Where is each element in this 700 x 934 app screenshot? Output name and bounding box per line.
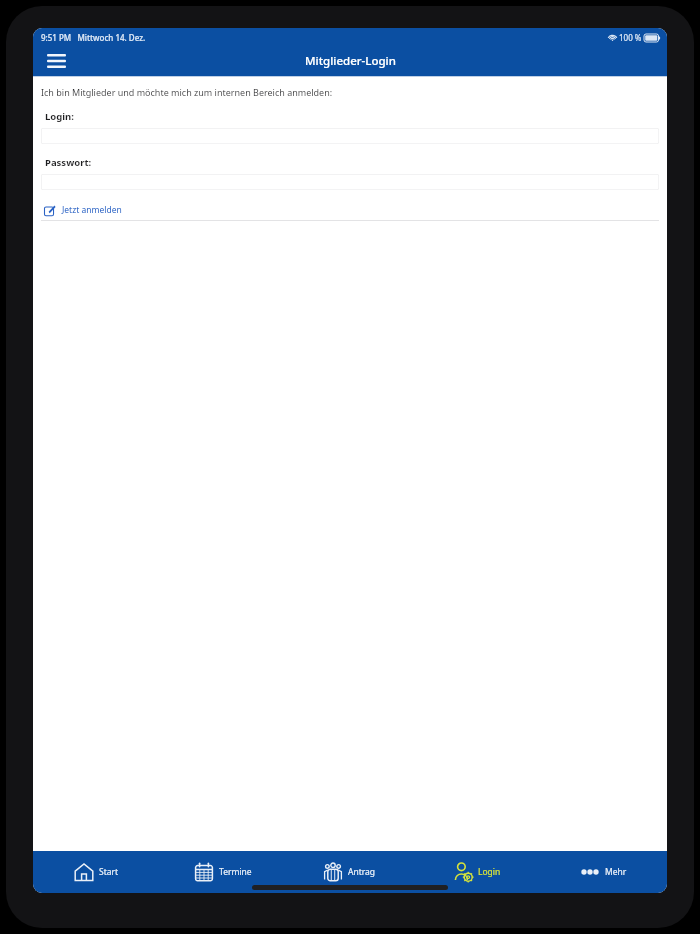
button[interactable] <box>41 174 659 190</box>
staticText: Passwort: <box>45 156 92 169</box>
button[interactable]: Antrag <box>286 851 413 893</box>
staticText: Login: <box>45 110 74 123</box>
staticText: Mitglieder-Login <box>305 53 396 69</box>
staticText: Login <box>478 866 501 878</box>
button[interactable]: Termine <box>159 851 286 893</box>
button[interactable]: Start <box>33 851 159 893</box>
staticText: 100 % <box>619 32 642 43</box>
button[interactable] <box>41 128 659 144</box>
staticText: 9:51 PM Mittwoch 14. Dez. <box>41 32 146 43</box>
button[interactable]: Jetzt anmelden <box>33 200 667 220</box>
staticText: Antrag <box>348 866 376 878</box>
button[interactable]: Menu <box>41 46 71 76</box>
staticText: Mehr <box>605 866 627 878</box>
button[interactable]: Login <box>413 851 540 893</box>
staticText: Termine <box>219 866 252 878</box>
staticText: Ich bin Mitglieder und möchte mich zum i… <box>41 86 333 98</box>
staticText: Start <box>99 866 119 878</box>
button[interactable]: Mehr <box>540 851 667 893</box>
staticText: Jetzt anmelden <box>62 204 122 216</box>
